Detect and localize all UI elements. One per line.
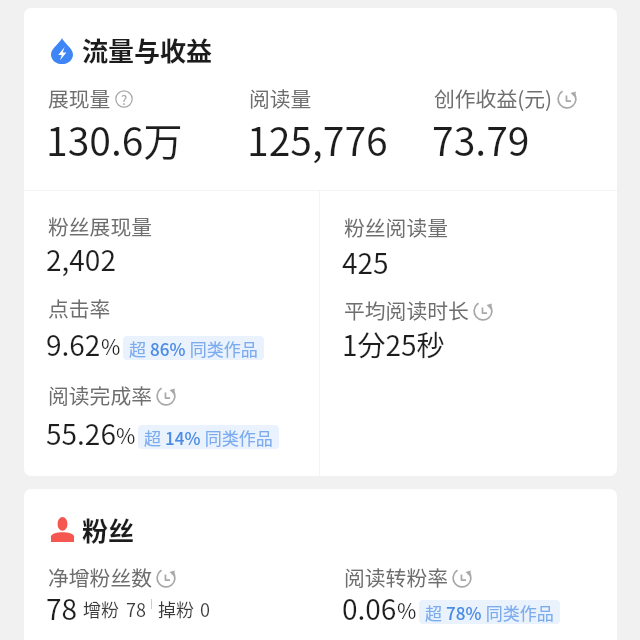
staticText: 创作收益(元) [434,83,553,113]
staticText: 同类作品 [201,425,273,449]
staticText: 超 [425,600,446,624]
staticText: 超 [129,336,150,360]
staticText: 增粉 [83,596,119,622]
staticText: 点击率 [48,293,111,323]
staticText: ? [121,90,128,108]
staticText: 阅读完成率 [48,380,152,410]
staticText: 130.6万 [46,111,183,167]
staticText: 净增粉丝数 [48,562,152,592]
button[interactable]: 超 [138,425,279,449]
button[interactable]: 粉丝 [24,503,617,549]
staticText: 平均阅读时长 [344,295,469,325]
staticText: 0 [200,596,210,622]
staticText: 阅读量 [249,83,312,113]
staticText: 粉丝 [82,511,135,549]
staticText: 流量与收益 [82,31,213,69]
staticText: 2,402 [46,239,116,280]
staticText: 超 [144,425,165,449]
staticText: 55.26 [46,413,116,454]
staticText: 阅读转粉率 [344,562,448,592]
staticText: 78 [126,596,146,622]
staticText: 78% [446,600,482,624]
staticText: 78 [46,588,78,629]
staticText: 同类作品 [186,336,258,360]
staticText: 14% [165,425,201,449]
staticText: 展现量 [48,83,111,113]
staticText: 9.62 [46,324,101,365]
button[interactable]: 流量与收益 [24,28,617,74]
staticText: 73.79 [432,111,530,167]
button[interactable]: 超 [419,600,560,624]
staticText: 粉丝阅读量 [344,212,448,242]
staticText: 掉粉 [158,596,194,622]
staticText: % [116,420,136,450]
staticText: % [101,331,121,361]
staticText: 粉丝展现量 [48,211,152,241]
staticText: 同类作品 [482,600,554,624]
staticText: % [397,595,417,625]
staticText: 125,776 [247,111,388,167]
staticText: 1分25秒 [342,324,445,365]
staticText: 425 [342,242,389,283]
button[interactable]: 超 [123,336,264,360]
staticText: 86% [150,336,186,360]
staticText: 0.06 [342,588,397,629]
